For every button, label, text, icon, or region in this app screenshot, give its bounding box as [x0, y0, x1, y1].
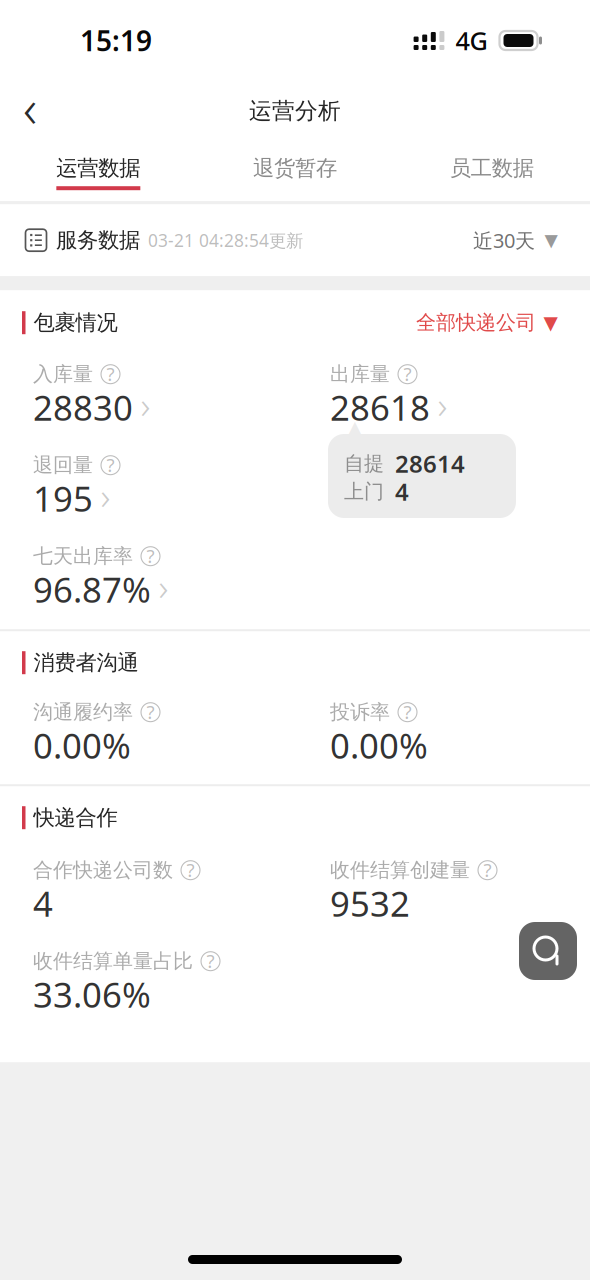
staticText: ?	[106, 361, 114, 386]
staticText: 消费者沟通	[33, 650, 138, 676]
staticText: ?	[106, 452, 114, 477]
staticText: 4	[395, 476, 409, 507]
button[interactable]: 返回	[2, 82, 58, 138]
staticText: 4G	[455, 24, 487, 57]
staticText: 4	[33, 880, 53, 926]
staticText: 15:19	[80, 22, 152, 59]
staticText: 03-21 04:28:54更新	[148, 229, 303, 252]
staticText: ?	[186, 857, 194, 882]
staticText: ?	[146, 543, 154, 568]
staticText: 七天出库率	[33, 544, 133, 568]
staticText: ?	[206, 948, 214, 973]
staticText: 运营分析	[249, 97, 341, 125]
staticText: 合作快递公司数	[33, 858, 173, 882]
staticText: 快递合作	[33, 805, 117, 831]
staticText: 收件结算单量占比	[33, 949, 193, 973]
staticText: 28614	[395, 448, 465, 479]
staticText: 96.87%	[33, 566, 151, 612]
staticText: ›	[140, 379, 150, 429]
button[interactable]: 全部快递公司	[416, 310, 558, 335]
staticText: ‹	[23, 72, 37, 142]
button[interactable]: 退货暂存	[197, 139, 393, 201]
button[interactable]: 近30天	[473, 227, 558, 253]
staticText: 上门	[344, 479, 384, 504]
button[interactable]: 运营数据	[0, 139, 197, 201]
staticText: ?	[403, 699, 411, 724]
button[interactable]: 搜索	[519, 922, 577, 980]
staticText: 入库量	[33, 362, 93, 386]
staticText: 运营数据	[56, 155, 140, 181]
staticText: ?	[146, 699, 154, 724]
staticText: 近30天	[473, 227, 535, 253]
staticText: 自提	[344, 451, 384, 476]
staticText: 9532	[330, 880, 410, 926]
staticText: 投诉率	[330, 700, 390, 724]
staticText: 退货暂存	[253, 155, 337, 181]
staticText: 33.06%	[33, 971, 151, 1017]
staticText: 沟通履约率	[33, 700, 133, 724]
staticText: ›	[437, 379, 447, 429]
staticText: 195	[33, 475, 93, 521]
staticText: ?	[403, 361, 411, 386]
staticText: 包裹情况	[33, 310, 117, 336]
staticText: 28830	[33, 384, 133, 430]
staticText: ▼	[544, 230, 557, 250]
staticText: 服务数据	[56, 227, 140, 253]
staticText: 收件结算创建量	[330, 858, 470, 882]
staticText: 退回量	[33, 453, 93, 477]
staticText: 0.00%	[33, 722, 131, 768]
staticText: 全部快递公司	[416, 310, 536, 335]
staticText: ▲	[339, 411, 370, 456]
staticText: ›	[158, 561, 168, 611]
staticText: 28618	[330, 384, 430, 430]
button[interactable]: 员工数据	[393, 139, 590, 201]
staticText: 员工数据	[450, 155, 534, 181]
staticText: ›	[100, 470, 110, 520]
staticText: ▼	[543, 312, 557, 333]
staticText: 0.00%	[330, 722, 428, 768]
staticText: 出库量	[330, 362, 390, 386]
staticText: ?	[483, 857, 491, 882]
